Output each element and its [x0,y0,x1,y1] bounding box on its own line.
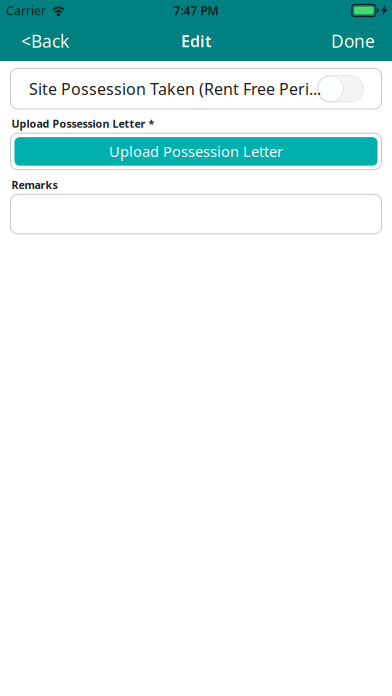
staticText: Carrier [6,2,46,18]
staticText: Upload Possession Letter [109,142,283,161]
staticText: Edit [181,30,211,52]
staticText: <Back [21,29,69,52]
staticText: Site Possession Taken (Rent Free Peri... [29,78,321,99]
staticText: Remarks [11,178,57,192]
button[interactable]: Done [321,21,392,61]
button[interactable]: Remarks text field [10,194,381,234]
staticText: Upload Possession Letter * [11,116,154,131]
staticText: Done [331,29,375,52]
button[interactable]: <Back [0,21,79,61]
button[interactable]: Site Possession Taken (Rent Free Peri... [10,68,381,109]
button[interactable]: Upload Possession Letter [10,137,381,166]
staticText: 7:47 PM [173,2,218,18]
